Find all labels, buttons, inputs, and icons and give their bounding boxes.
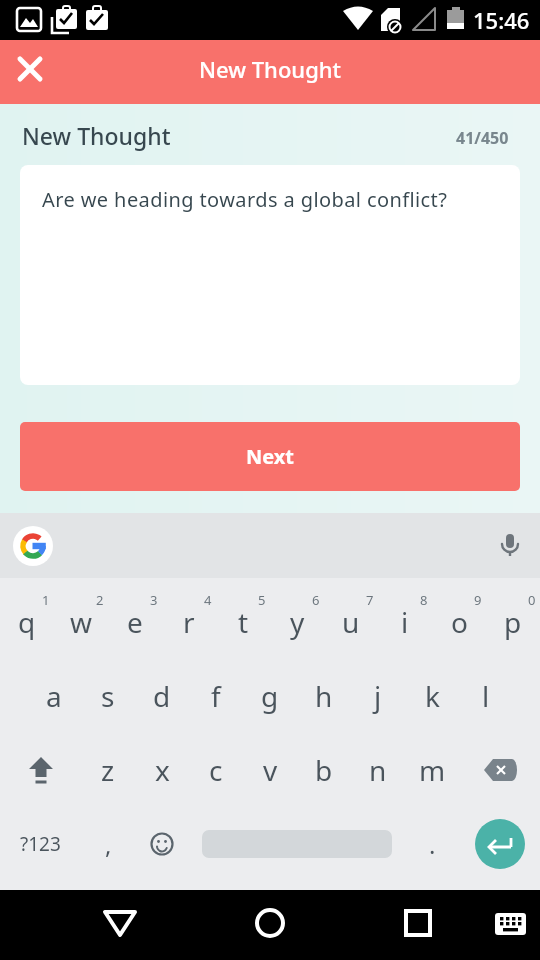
staticText: Are we heading towards a global conflict… [42,186,448,213]
staticText: 3 [150,591,158,609]
button[interactable]: x [135,733,189,807]
staticText: z [101,751,115,789]
button[interactable] [180,890,360,960]
button[interactable]: b [297,733,351,807]
staticText: n [369,751,387,789]
button[interactable]: v [243,733,297,807]
staticText: f [211,677,221,715]
button[interactable]: r [162,585,216,659]
staticText: w [70,603,93,641]
button[interactable] [459,807,540,881]
button[interactable]: h [297,659,351,733]
button[interactable]: Next [20,422,520,491]
button[interactable]: u [324,585,378,659]
staticText: t [238,603,249,641]
staticText: , [105,828,112,861]
staticText: 6 [312,591,320,609]
staticText: 7 [366,591,374,609]
button[interactable]: n [351,733,405,807]
button[interactable]: t [216,585,270,659]
staticText: x [155,751,170,789]
staticText: d [153,677,171,715]
staticText: 41/450 [456,127,509,149]
staticText: 15:46 [473,5,530,35]
staticText: 2 [96,591,104,609]
button[interactable] [360,890,540,960]
staticText: g [261,677,279,715]
staticText: i [401,603,409,641]
staticText: New Thought [22,120,171,151]
button[interactable]: c [189,733,243,807]
button[interactable]: p [486,585,540,659]
staticText: u [342,603,360,641]
button[interactable] [459,733,540,807]
staticText: 5 [258,591,266,609]
staticText: s [101,677,115,715]
button[interactable]: y [270,585,324,659]
button[interactable]: f [189,659,243,733]
staticText: p [504,603,522,641]
button[interactable]: i [378,585,432,659]
staticText: 4 [204,591,212,609]
button[interactable]: e [108,585,162,659]
button[interactable]: s [81,659,135,733]
staticText: . [429,828,436,861]
staticText: y [290,603,305,641]
button[interactable]: , [81,807,135,881]
staticText: r [183,603,195,641]
button[interactable]: . [405,807,459,881]
button[interactable]: m [405,733,459,807]
button[interactable]: w [54,585,108,659]
staticText: b [315,751,333,789]
button[interactable] [135,807,189,881]
button[interactable]: z [81,733,135,807]
staticText: k [425,677,440,715]
staticText: l [482,677,490,715]
staticText: 1 [42,591,50,609]
staticText: 9 [474,591,482,609]
button[interactable]: a [27,659,81,733]
button[interactable]: j [351,659,405,733]
staticText: m [419,751,446,789]
staticText: New Thought [199,54,341,84]
staticText: o [451,603,468,641]
button[interactable] [13,52,47,86]
button[interactable] [492,528,528,564]
button[interactable]: Are we heading towards a global conflict… [20,165,520,385]
button[interactable]: ?123 [0,807,81,881]
button[interactable]: q [0,585,54,659]
staticText: 8 [420,591,428,609]
staticText: c [209,751,223,789]
staticText: Next [246,443,295,470]
staticText: e [127,603,143,641]
staticText: j [374,677,382,715]
staticText: v [263,751,278,789]
button[interactable]: d [135,659,189,733]
button[interactable] [0,890,180,960]
button[interactable]: g [243,659,297,733]
button[interactable]: o [432,585,486,659]
button[interactable]: l [459,659,513,733]
button[interactable]: k [405,659,459,733]
staticText: ?123 [20,831,61,857]
button[interactable] [13,526,53,566]
staticText: a [46,677,62,715]
button[interactable] [0,733,81,807]
staticText: q [18,603,36,641]
staticText: h [315,677,333,715]
staticText: 0 [528,591,536,609]
